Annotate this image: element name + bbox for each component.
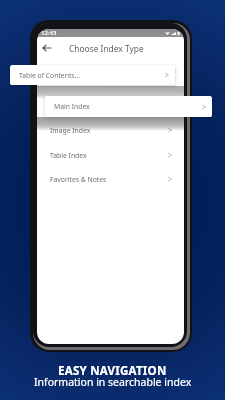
staticText: Choose Index Type <box>69 43 144 54</box>
button[interactable]: Table of Contents... <box>10 65 175 85</box>
staticText: Favorites & Notes <box>50 175 107 184</box>
staticText: Information in searchable index <box>34 375 192 389</box>
button[interactable]: Back <box>37 38 56 58</box>
staticText: 12:43 <box>41 29 57 37</box>
button[interactable]: Image Index <box>45 119 178 141</box>
staticText: Table Index <box>50 151 87 160</box>
staticText: Main Index <box>54 102 90 111</box>
button[interactable]: Favorites & Notes <box>45 168 178 190</box>
button[interactable]: Main Index <box>45 96 212 117</box>
staticText: Table of Contents... <box>19 71 81 80</box>
staticText: EASY NAVIGATION <box>58 363 167 379</box>
button[interactable]: Table Index <box>45 144 178 166</box>
staticText: Image Index <box>50 126 91 135</box>
